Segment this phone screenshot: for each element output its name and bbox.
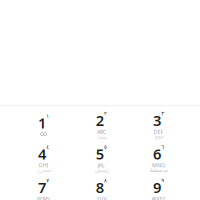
staticText: WXYZ <box>152 195 166 200</box>
staticText: جچح <box>154 133 163 140</box>
button[interactable]: 9 <box>132 181 186 200</box>
staticText: صضطظ <box>149 167 168 173</box>
staticText: ٣ <box>161 110 164 117</box>
staticText: ٦ <box>161 144 164 150</box>
button[interactable]: 6 <box>132 148 186 172</box>
staticText: TUV <box>96 195 106 200</box>
staticText: ٨ <box>104 177 107 184</box>
staticText: ABC <box>97 128 106 135</box>
staticText: GHI <box>39 161 49 169</box>
staticText: ژسش <box>94 167 108 173</box>
button[interactable]: 7 <box>17 181 71 200</box>
staticText: 5 <box>96 144 104 164</box>
button[interactable]: 5 <box>74 148 128 172</box>
staticText: 4 <box>38 144 46 164</box>
staticText: 7 <box>38 177 46 197</box>
button[interactable]: 4 <box>17 148 71 172</box>
staticText: DEF <box>154 128 164 135</box>
staticText: ٩ <box>161 177 164 184</box>
staticText: 9 <box>153 177 161 197</box>
staticText: PQRS <box>37 195 50 200</box>
button[interactable]: 8 <box>74 181 128 200</box>
button[interactable]: 1 <box>17 114 71 138</box>
staticText: 6 <box>153 144 161 164</box>
staticText: MNO <box>152 161 165 169</box>
staticText: ٢ <box>104 110 107 117</box>
staticText: ٧ <box>46 177 49 184</box>
button[interactable]: 2 <box>74 114 128 138</box>
staticText: ٤ <box>46 144 49 150</box>
staticText: ١ <box>46 113 49 119</box>
staticText: 8 <box>96 177 104 197</box>
staticText: 3 <box>153 110 161 130</box>
staticText: خدذرز <box>37 167 51 173</box>
staticText: 1 <box>38 113 46 133</box>
button[interactable]: 3 <box>132 114 186 138</box>
staticText: بپتث <box>96 133 106 140</box>
staticText: 2 <box>96 110 104 130</box>
staticText: JKL <box>98 161 105 169</box>
staticText: ٥ <box>104 144 107 150</box>
